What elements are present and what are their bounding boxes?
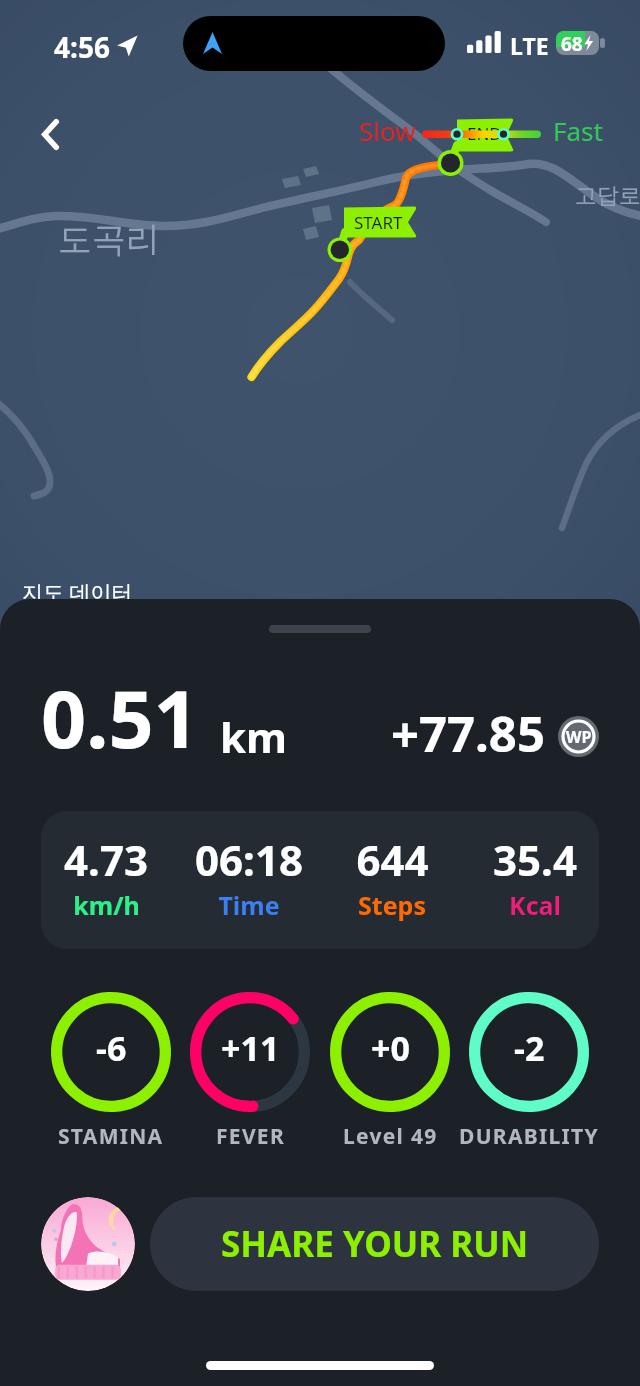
staticText: 644 [356, 831, 429, 888]
staticText: FEVER [216, 1122, 285, 1151]
staticText: Kcal [509, 888, 561, 922]
button[interactable]: SHARE YOUR RUN [150, 1197, 599, 1291]
staticText: Slow [359, 113, 416, 148]
staticText: km/h [73, 888, 140, 922]
staticText: 35.4 [493, 831, 577, 888]
staticText: WP [566, 726, 592, 748]
staticText: 고답로 [575, 182, 640, 210]
staticText: LTE [510, 30, 549, 61]
staticText: -2 [514, 1025, 545, 1071]
staticText: STAMINA [58, 1122, 164, 1151]
staticText: 0.51 [41, 664, 199, 772]
staticText: Fast [553, 113, 603, 148]
staticText: SHARE YOUR RUN [221, 1220, 529, 1268]
staticText: 06:18 [195, 831, 303, 888]
staticText: Steps [358, 888, 426, 922]
staticText: Level 49 [343, 1122, 438, 1151]
staticText: 지도 데이터 [22, 578, 133, 607]
staticText: END [467, 122, 502, 145]
staticText: -6 [96, 1025, 127, 1071]
button[interactable]: Back [22, 106, 78, 162]
button[interactable]: WP points [558, 716, 599, 757]
staticText: Time [218, 888, 280, 922]
staticText: 68 [561, 31, 583, 55]
staticText: +0 [371, 1025, 410, 1071]
staticText: DURABILITY [459, 1122, 599, 1151]
staticText: km [220, 708, 287, 765]
staticText: START [354, 211, 403, 234]
staticText: 도곡리 [58, 218, 160, 261]
staticText: +11 [221, 1025, 280, 1071]
button[interactable]: Profile shoe avatar [41, 1197, 135, 1291]
staticText: 4:56 [54, 28, 110, 66]
staticText: 4.73 [64, 831, 148, 888]
staticText: +77.85 [391, 700, 545, 767]
